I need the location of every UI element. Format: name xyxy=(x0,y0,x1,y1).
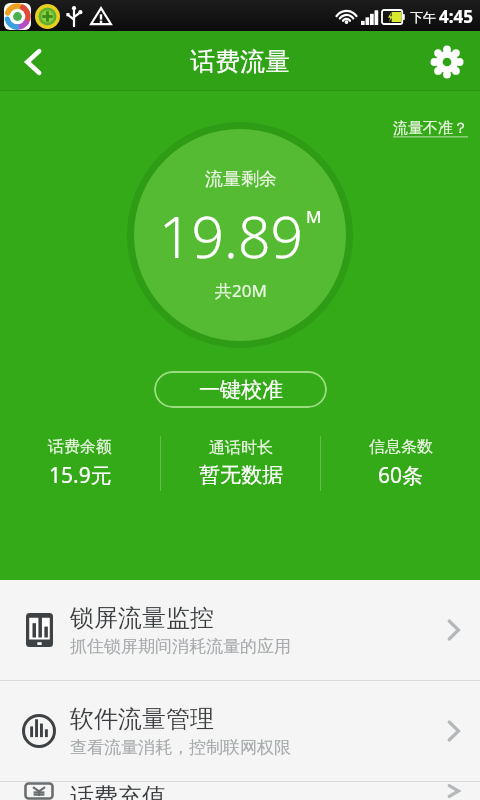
staticText: 共20M xyxy=(215,279,267,302)
staticText: 抓住锁屏期间消耗流量的应用 xyxy=(70,636,291,657)
button[interactable]: 话费充值 xyxy=(0,782,480,800)
button[interactable]: 信息条数 xyxy=(321,437,480,490)
staticText: 暂无数据 xyxy=(199,462,283,488)
staticText: 话费充值 xyxy=(70,782,166,800)
button[interactable]: 锁屏流量监控 xyxy=(0,580,480,680)
button[interactable]: Back xyxy=(0,33,66,90)
button[interactable]: Settings xyxy=(414,33,480,90)
staticText: 话费余额 xyxy=(48,437,112,457)
button[interactable]: 通话时长 xyxy=(161,438,320,488)
staticText: 一键校准 xyxy=(199,377,283,403)
staticText: 15.9元 xyxy=(49,461,112,490)
staticText: 4:45 xyxy=(439,5,473,28)
staticText: 锁屏流量监控 xyxy=(70,603,214,633)
button[interactable]: 一键校准 xyxy=(154,371,327,408)
button[interactable]: 软件流量管理 xyxy=(0,681,480,781)
staticText: 下午 xyxy=(410,9,436,25)
staticText: 话费流量 xyxy=(190,46,290,77)
staticText: 流量剩余 xyxy=(205,168,277,191)
staticText: 信息条数 xyxy=(369,437,433,457)
staticText: 19.89 xyxy=(159,197,304,275)
button[interactable]: 流量不准？ xyxy=(393,119,468,138)
staticText: 软件流量管理 xyxy=(70,704,214,734)
staticText: 通话时长 xyxy=(209,438,273,458)
button[interactable]: 话费余额 xyxy=(0,437,160,490)
staticText: 查看流量消耗，控制联网权限 xyxy=(70,737,291,758)
staticText: M xyxy=(306,205,322,228)
staticText: 60条 xyxy=(378,461,424,490)
